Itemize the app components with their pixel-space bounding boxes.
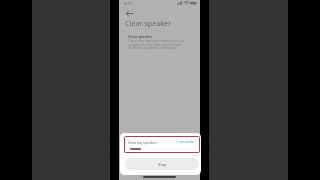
button[interactable]: Back [123,7,135,19]
staticText: Play a tone that clears water out of the… [128,39,192,49]
staticText: Clear speaker [125,18,172,28]
button[interactable]: Stop [125,158,199,170]
button[interactable]: Clearing speaker... [124,136,200,153]
staticText: Clearing speaker... [128,140,159,145]
staticText: 1 min mode [176,140,194,144]
staticText: Clear speaker [128,34,153,39]
staticText: 9:41 [124,1,133,7]
staticText: Stop [158,162,167,167]
